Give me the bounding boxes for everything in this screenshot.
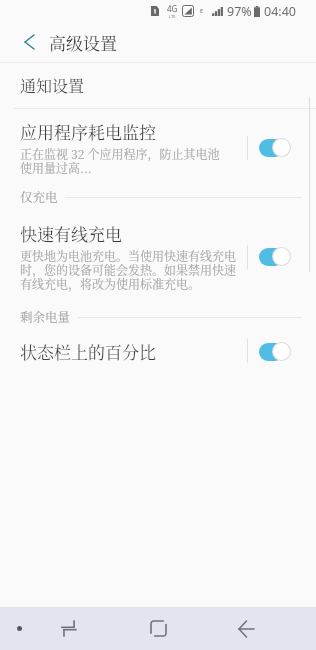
staticText: 剩余电量 — [20, 308, 71, 326]
button[interactable]: 应用程序耗电监控 — [0, 109, 316, 184]
button[interactable]: Switch windows — [47, 607, 91, 650]
staticText: 状态栏上的百分比 — [20, 339, 156, 363]
staticText: 4G — [167, 3, 178, 14]
staticText: 仅充电 — [20, 188, 58, 206]
staticText: 快速有线充电 — [20, 221, 122, 245]
button[interactable]: Bixby — [7, 607, 32, 650]
staticText: 正在监视 32 个应用程序，防止其电池 使用量过高... — [20, 145, 220, 176]
staticText: LTE — [169, 14, 176, 19]
staticText: 通知设置 — [20, 74, 85, 97]
staticText: E — [200, 7, 204, 15]
button[interactable]: Recent apps — [136, 607, 180, 650]
staticText: 更快地为电池充电。当使用快速有线充电 时，您的设备可能会发热。如果禁用快速 有线… — [20, 247, 237, 292]
staticText: 04:40 — [264, 3, 296, 20]
staticText: 高级设置 — [49, 30, 117, 54]
button[interactable]: 状态栏上的百分比 — [0, 330, 316, 372]
staticText: 应用程序耗电监控 — [20, 119, 156, 143]
button[interactable]: Back — [12, 22, 46, 62]
staticText: 97% — [227, 3, 252, 20]
button[interactable]: Back — [224, 607, 268, 650]
button[interactable]: 快速有线充电 — [0, 210, 316, 304]
